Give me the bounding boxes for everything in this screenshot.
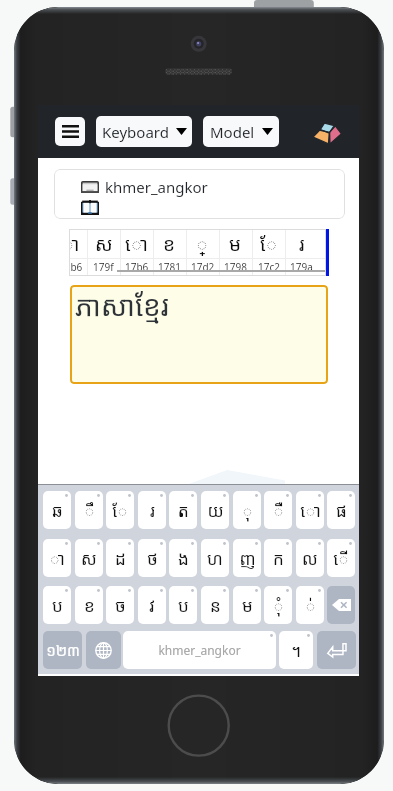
button[interactable]: ល — [296, 539, 324, 577]
button[interactable]: ត — [169, 491, 197, 529]
button[interactable]: ប — [169, 586, 197, 624]
button[interactable]: ថ — [138, 539, 166, 577]
staticText: ១២៣ — [46, 640, 80, 660]
staticText: ល — [302, 547, 318, 570]
staticText: ◌ោ — [300, 499, 321, 522]
staticText: Keyboard — [102, 122, 169, 142]
button[interactable]: ◌ឺ — [264, 491, 292, 529]
staticText: រ — [150, 499, 155, 522]
staticText: ◌ា — [49, 547, 65, 570]
staticText: 17b6 — [69, 260, 83, 274]
staticText: ក — [273, 547, 284, 570]
button[interactable]: ◌ើ — [327, 539, 355, 577]
staticText: 17c2 — [258, 260, 280, 274]
button[interactable]: Model — [203, 116, 279, 147]
staticText: ◌ែ — [260, 231, 278, 257]
button[interactable]: ◌ែ — [106, 491, 134, 529]
staticText: ដ — [115, 547, 126, 570]
button[interactable]: ◌ោ — [296, 491, 324, 529]
button[interactable]: Backspace — [327, 586, 355, 624]
staticText: ◌ុំ — [273, 594, 284, 617]
staticText: ថ — [147, 547, 158, 570]
staticText: ◌់ — [305, 594, 316, 617]
staticText: ប — [178, 594, 189, 617]
button[interactable]: ◌ុ — [233, 491, 261, 529]
button[interactable]: Keyboard — [96, 116, 192, 147]
staticText: ស — [81, 547, 97, 570]
staticText: ◌ា — [69, 231, 80, 257]
button[interactable]: ◌ុំ — [264, 586, 292, 624]
staticText: ហ — [207, 547, 223, 570]
button[interactable]: ស — [75, 539, 103, 577]
staticText: វ — [149, 594, 155, 617]
staticText: ខ — [84, 594, 95, 617]
staticText: ◌ឹ — [84, 499, 95, 522]
staticText: ឆ — [52, 499, 63, 522]
button[interactable]: Menu — [55, 117, 85, 146]
staticText: រ — [299, 231, 305, 257]
button[interactable]: ក — [264, 539, 292, 577]
button[interactable]: យ — [201, 491, 229, 529]
button[interactable]: ច — [106, 586, 134, 624]
staticText: 179f — [93, 260, 114, 274]
button[interactable]: ប — [43, 586, 71, 624]
button[interactable]: Globe — [86, 631, 121, 669]
staticText: ម — [229, 231, 242, 257]
button[interactable]: ង — [169, 539, 197, 577]
button[interactable]: ១២៣ — [43, 631, 82, 669]
staticText: 1781 — [158, 260, 181, 274]
staticText: ខ — [163, 231, 176, 257]
button[interactable]: ម — [233, 586, 261, 624]
staticText: ផ — [336, 499, 347, 522]
staticText: khmer_angkor — [158, 642, 241, 658]
button[interactable]: ខ — [75, 586, 103, 624]
staticText: ញ — [239, 547, 256, 570]
staticText: ◌ុ — [242, 499, 253, 522]
button[interactable]: ភាសាខ្មែរ — [70, 285, 328, 384]
button[interactable]: khmer_angkor — [123, 631, 276, 669]
staticText: 1798 — [224, 260, 247, 274]
button[interactable]: វ — [138, 586, 166, 624]
button[interactable]: រ — [138, 491, 166, 529]
staticText: យ — [207, 499, 224, 522]
button[interactable]: ផ — [327, 491, 355, 529]
button[interactable]: khmer_angkor — [54, 169, 345, 219]
staticText: ស — [95, 231, 113, 257]
staticText: ប — [52, 594, 63, 617]
staticText: ភាសាខ្មែរ — [75, 286, 169, 324]
staticText: ត — [178, 499, 189, 522]
button[interactable]: ។ — [279, 631, 313, 669]
staticText: ◌្ — [196, 231, 209, 257]
staticText: ង — [178, 547, 189, 570]
button[interactable]: ◌ា — [43, 539, 71, 577]
staticText: ម — [242, 594, 253, 617]
button[interactable]: Enter — [317, 631, 356, 669]
staticText: ◌ើ — [333, 547, 349, 570]
staticText: ◌ឺ — [273, 499, 284, 522]
staticText: 179a — [290, 260, 313, 274]
button[interactable]: ហ — [201, 539, 229, 577]
button[interactable]: ន — [201, 586, 229, 624]
staticText: khmer_angkor — [105, 177, 208, 197]
staticText: ន — [210, 594, 221, 617]
staticText: 17b6 — [125, 260, 149, 274]
staticText: 17d2 — [191, 260, 215, 274]
button[interactable]: ◌ឹ — [75, 491, 103, 529]
staticText: ច — [115, 594, 126, 617]
button[interactable]: ឆ — [43, 491, 71, 529]
staticText: ◌ោ — [125, 231, 149, 257]
button[interactable]: Keyman — [308, 114, 344, 150]
staticText: Model — [210, 122, 255, 142]
button[interactable]: ញ — [233, 539, 261, 577]
staticText: ◌ែ — [112, 499, 128, 522]
staticText: ។ — [291, 639, 301, 662]
button[interactable]: ដ — [106, 539, 134, 577]
button[interactable]: ◌់ — [296, 586, 324, 624]
